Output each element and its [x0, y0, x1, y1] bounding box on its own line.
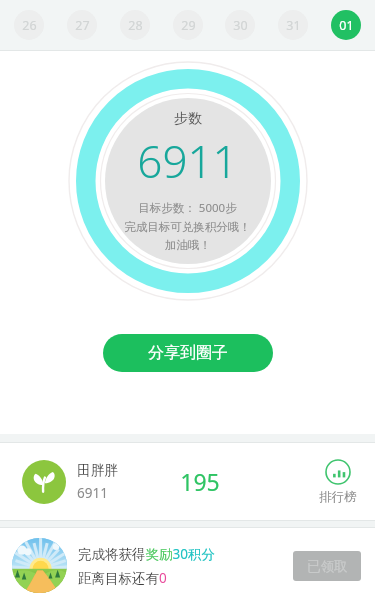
button[interactable]: 28: [120, 10, 150, 40]
staticText: 加油哦！: [165, 238, 211, 252]
button[interactable]: 分享到圈子: [103, 334, 273, 372]
staticText: 6911: [77, 484, 108, 502]
button[interactable]: 31: [278, 10, 308, 40]
staticText: 30: [233, 17, 248, 34]
button[interactable]: 30: [225, 10, 255, 40]
staticText: 分享到圈子: [148, 343, 228, 363]
staticText: 26: [22, 17, 37, 34]
staticText: 完成将获得奖励30积分: [78, 545, 215, 563]
button[interactable]: 已领取: [293, 551, 361, 581]
button[interactable]: 26: [14, 10, 44, 40]
staticText: 田胖胖: [77, 462, 118, 479]
staticText: 已领取: [307, 558, 348, 575]
button[interactable]: 27: [67, 10, 97, 40]
staticText: 6911: [137, 131, 238, 191]
staticText: 195: [180, 466, 220, 497]
staticText: 28: [128, 17, 143, 34]
staticText: 29: [181, 17, 196, 34]
button[interactable]: 29: [173, 10, 203, 40]
staticText: 排行榜: [319, 489, 357, 505]
button[interactable]: 01: [331, 10, 361, 40]
staticText: 01: [339, 17, 354, 34]
staticText: 目标步数： 5000步: [138, 200, 237, 216]
staticText: 31: [286, 17, 301, 34]
staticText: 步数: [174, 110, 202, 128]
button[interactable]: 田胖胖: [0, 443, 375, 520]
staticText: 距离目标还有0: [78, 569, 167, 587]
button[interactable]: 排行榜: [315, 459, 361, 505]
staticText: 完成目标可兑换积分哦！: [124, 220, 251, 234]
staticText: 27: [75, 17, 90, 34]
